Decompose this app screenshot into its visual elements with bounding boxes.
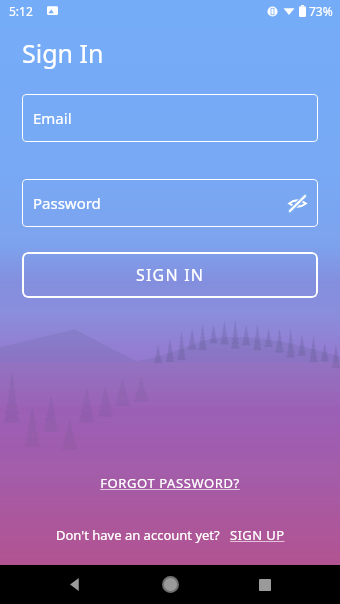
button[interactable]: Show password — [285, 191, 309, 215]
button[interactable]: Recent apps — [245, 565, 285, 604]
button[interactable]: SIGN IN — [22, 252, 318, 298]
button[interactable]: FORGOT PASSWORD? — [92, 470, 248, 496]
staticText: Sign In — [22, 36, 104, 70]
staticText: 73% — [309, 3, 333, 19]
button[interactable]: Back — [55, 565, 95, 604]
staticText: Don't have an account yet? — [56, 526, 220, 544]
staticText: SIGN IN — [136, 264, 205, 286]
staticText: Password — [33, 193, 101, 213]
staticText: FORGOT PASSWORD? — [100, 474, 240, 492]
button[interactable]: Home — [150, 565, 190, 604]
staticText: 5:12 — [9, 3, 33, 19]
button[interactable]: SIGN UP — [230, 526, 285, 544]
staticText: Email — [33, 108, 72, 128]
staticText: SIGN UP — [230, 526, 285, 544]
button[interactable]: Password — [22, 179, 318, 227]
button[interactable]: Email — [22, 94, 318, 142]
